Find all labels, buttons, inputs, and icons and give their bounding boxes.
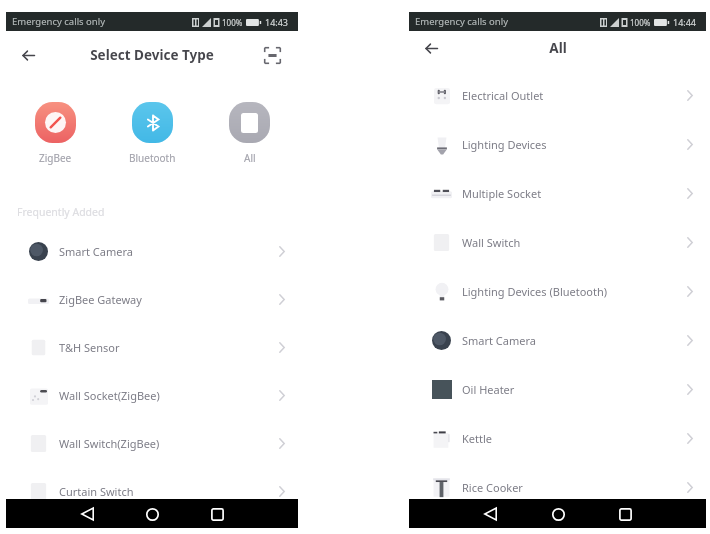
staticText: Oil Heater (462, 382, 515, 397)
button[interactable]: Bluetooth (129, 102, 176, 165)
staticText: ZigBee Gateway (59, 292, 142, 307)
staticText: Electrical Outlet (462, 88, 544, 103)
button[interactable]: Back (16, 43, 40, 67)
button[interactable]: Home (545, 501, 571, 527)
button[interactable]: Recents (612, 501, 638, 527)
staticText: 100% (630, 17, 651, 28)
staticText: All (549, 39, 567, 57)
button[interactable]: Multiple Socket (409, 169, 706, 218)
button[interactable]: Curtain Switch (6, 467, 298, 515)
staticText: Emergency calls only (12, 15, 106, 28)
staticText: Wall Switch(ZigBee) (59, 436, 160, 451)
staticText: Wall Switch (462, 235, 521, 250)
button[interactable]: Wall Switch(ZigBee) (6, 419, 298, 467)
staticText: Wall Socket(ZigBee) (59, 388, 160, 403)
button[interactable]: Lighting Devices (Bluetooth) (409, 267, 706, 316)
button[interactable]: Smart Camera (409, 316, 706, 365)
button[interactable]: All (229, 102, 270, 165)
button[interactable]: Back (477, 501, 503, 527)
button[interactable]: ZigBee (35, 102, 76, 165)
staticText: Frequently Added (17, 205, 105, 219)
staticText: ZigBee (39, 151, 72, 165)
staticText: Lighting Devices (462, 137, 547, 152)
staticText: T&H Sensor (59, 340, 120, 355)
button[interactable]: T&H Sensor (6, 323, 298, 371)
staticText: Bluetooth (129, 151, 176, 165)
button[interactable]: Back (419, 36, 443, 60)
button[interactable]: Home (139, 501, 165, 527)
staticText: 14:44 (673, 16, 697, 28)
staticText: Kettle (462, 431, 492, 446)
staticText: 14:43 (265, 16, 289, 28)
staticText: Smart Camera (462, 333, 536, 348)
staticText: Multiple Socket (462, 186, 542, 201)
button[interactable]: Electrical Outlet (409, 71, 706, 120)
button[interactable]: Oil Heater (409, 365, 706, 414)
button[interactable]: Smart Camera (6, 227, 298, 275)
button[interactable]: Wall Switch (409, 218, 706, 267)
button[interactable]: Lighting Devices (409, 120, 706, 169)
staticText: Select Device Type (90, 46, 214, 64)
staticText: Emergency calls only (415, 15, 509, 28)
staticText: All (244, 151, 256, 165)
staticText: Curtain Switch (59, 484, 134, 499)
button[interactable]: Wall Socket(ZigBee) (6, 371, 298, 419)
staticText: 100% (222, 17, 243, 28)
button[interactable]: Scan (260, 43, 284, 67)
button[interactable]: Kettle (409, 414, 706, 463)
button[interactable]: ZigBee Gateway (6, 275, 298, 323)
staticText: Smart Camera (59, 244, 133, 259)
button[interactable]: Rice Cooker (409, 463, 706, 512)
button[interactable]: Back (74, 501, 100, 527)
staticText: Lighting Devices (Bluetooth) (462, 284, 608, 299)
button[interactable]: Recents (204, 501, 230, 527)
staticText: Rice Cooker (462, 480, 523, 495)
